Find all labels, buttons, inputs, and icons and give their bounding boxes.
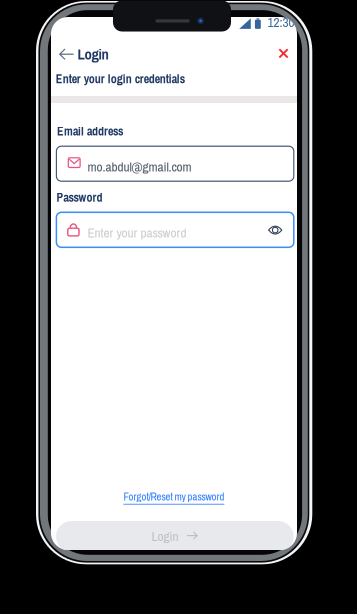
staticText: Enter your password — [88, 224, 187, 242]
staticText: Forgot/Reset my password — [123, 489, 224, 504]
button[interactable]: Back — [54, 42, 78, 66]
staticText: Password — [56, 189, 102, 206]
staticText: Login — [77, 44, 108, 64]
staticText: mo.abdul@gmail.com — [88, 158, 192, 176]
button[interactable]: Close — [272, 42, 294, 64]
staticText: Login — [152, 527, 179, 545]
staticText: 12:30 — [268, 13, 295, 31]
button[interactable]: Forgot/Reset my password — [122, 489, 225, 505]
button[interactable]: Login — [56, 521, 294, 552]
staticText: Email address — [57, 123, 123, 139]
button[interactable]: Login — [74, 41, 111, 67]
button[interactable]: Show password — [263, 218, 287, 242]
staticText: Enter your login credentials — [56, 71, 185, 87]
